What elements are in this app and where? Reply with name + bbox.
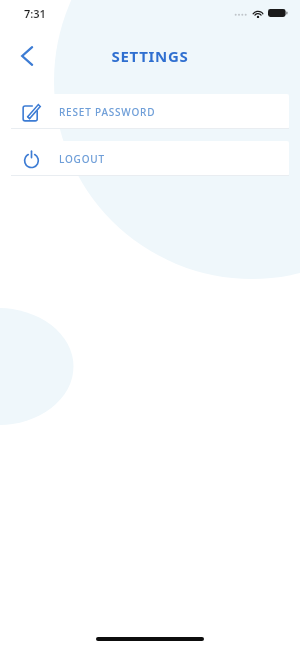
staticText: RESET PASSWORD — [59, 105, 156, 119]
staticText: 7:31 — [24, 6, 46, 21]
button[interactable]: LOGOUT — [11, 141, 289, 176]
button[interactable]: RESET PASSWORD — [11, 94, 289, 129]
button[interactable]: Back — [10, 39, 44, 73]
staticText: LOGOUT — [59, 152, 105, 166]
staticText: SETTINGS — [111, 46, 189, 66]
